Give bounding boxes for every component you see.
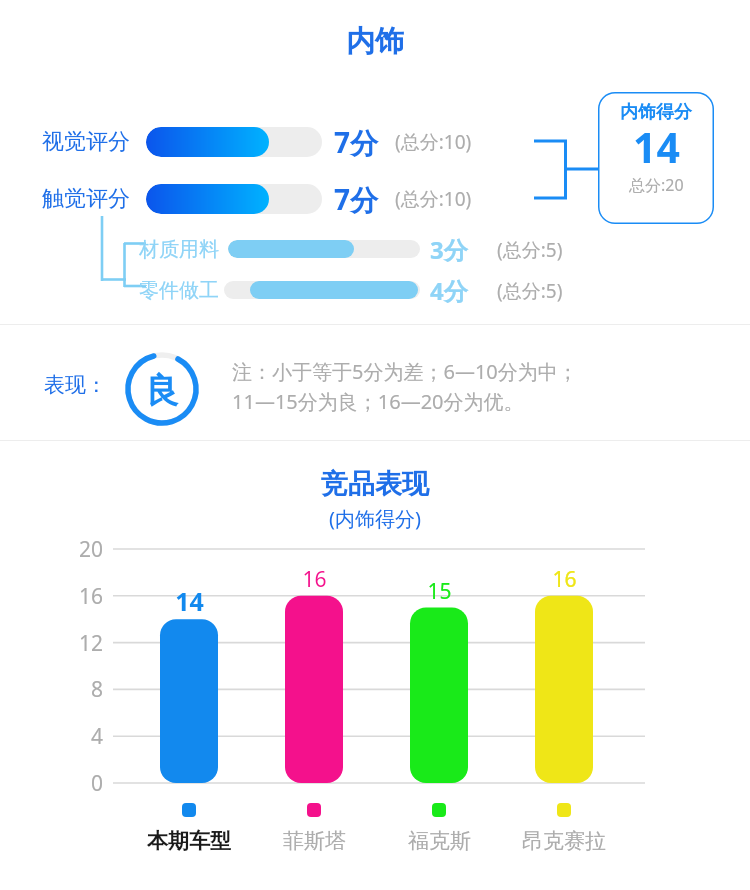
button[interactable]: 福克斯 (379, 828, 499, 854)
staticText: (总分:5) (497, 237, 563, 263)
staticText: 7分 (334, 123, 379, 161)
staticText: 15 (427, 577, 452, 606)
staticText: 触觉评分 (42, 185, 130, 213)
button[interactable]: 视觉评分 (0, 122, 750, 162)
staticText: (总分:5) (497, 278, 563, 304)
staticText: 4分 (430, 274, 468, 307)
staticText: 16 (552, 565, 577, 594)
staticText: 8 (91, 675, 104, 704)
button[interactable]: 触觉评分 (0, 179, 750, 219)
staticText: (内饰得分) (329, 505, 421, 532)
staticText: 总分:20 (629, 174, 684, 196)
button[interactable]: 昂克赛拉 (504, 828, 624, 854)
staticText: 内饰 (346, 23, 404, 60)
button[interactable]: 零件做工 (0, 272, 750, 306)
staticText: 菲斯塔 (283, 828, 346, 854)
button[interactable]: 本期车型 (129, 828, 249, 854)
staticText: 材质用料 (139, 237, 219, 262)
staticText: 12 (79, 629, 104, 658)
staticText: 表现： (44, 372, 107, 398)
staticText: (总分:10) (395, 186, 472, 212)
staticText: 良 (145, 369, 179, 412)
button[interactable]: 评级 良 (123, 350, 201, 428)
staticText: 14 (175, 584, 204, 618)
staticText: 注：小于等于5分为差；6—10分为中； (232, 358, 578, 385)
staticText: 7分 (334, 180, 379, 218)
button[interactable]: 内饰得分 (598, 92, 714, 224)
button[interactable]: 材质用料 (0, 231, 750, 265)
staticText: (总分:10) (395, 129, 472, 155)
staticText: 3分 (430, 233, 468, 266)
staticText: 14 (633, 119, 680, 175)
staticText: 16 (79, 582, 104, 611)
staticText: 16 (302, 565, 327, 594)
staticText: 福克斯 (408, 828, 471, 854)
staticText: 竞品表现 (321, 467, 429, 501)
staticText: 4 (91, 722, 104, 751)
staticText: 本期车型 (147, 828, 231, 854)
staticText: 内饰得分 (620, 101, 692, 124)
staticText: 0 (91, 769, 104, 798)
staticText: 20 (79, 535, 104, 564)
staticText: 11—15分为良；16—20分为优。 (232, 388, 524, 415)
staticText: 视觉评分 (42, 128, 130, 156)
staticText: 零件做工 (139, 278, 219, 303)
staticText: 昂克赛拉 (522, 828, 606, 854)
button[interactable]: 菲斯塔 (254, 828, 374, 854)
